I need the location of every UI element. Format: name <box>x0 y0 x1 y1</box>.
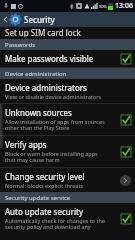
button[interactable]: Set up SIM card lock <box>0 27 135 37</box>
staticText: Device administration <box>5 70 67 78</box>
staticText: Normal: blocks explicit threats <box>5 182 84 189</box>
staticText: Verify apps <box>5 139 47 150</box>
button[interactable]: Device administrators <box>0 79 135 103</box>
staticText: Passwords <box>5 41 36 49</box>
button[interactable]: Verify apps <box>0 136 135 167</box>
staticText: Security update service <box>5 194 71 202</box>
button[interactable]: Back <box>0 12 10 27</box>
button[interactable]: Auto update security <box>0 203 135 234</box>
staticText: Set up SIM card lock <box>5 27 81 37</box>
staticText: Automatically check for changes to the s… <box>5 217 106 231</box>
staticText: Change security level <box>5 171 85 182</box>
staticText: Make passwords visible <box>5 53 94 64</box>
staticText: Device administrators <box>5 82 87 93</box>
staticText: 30% <box>99 4 107 9</box>
staticText: Security <box>24 14 55 25</box>
staticText: Unknown sources <box>5 107 72 118</box>
staticText: Allow installation of apps from sources … <box>5 118 105 132</box>
button[interactable]: Make passwords visible <box>0 50 135 67</box>
staticText: 13:06 <box>115 1 133 11</box>
staticText: Block or warn before installing apps tha… <box>5 150 98 164</box>
button[interactable]: Change security level <box>0 168 135 192</box>
staticText: View or disable device administrators <box>5 93 102 100</box>
button[interactable]: Unknown sources <box>0 104 135 135</box>
staticText: Auto update security <box>5 206 84 217</box>
